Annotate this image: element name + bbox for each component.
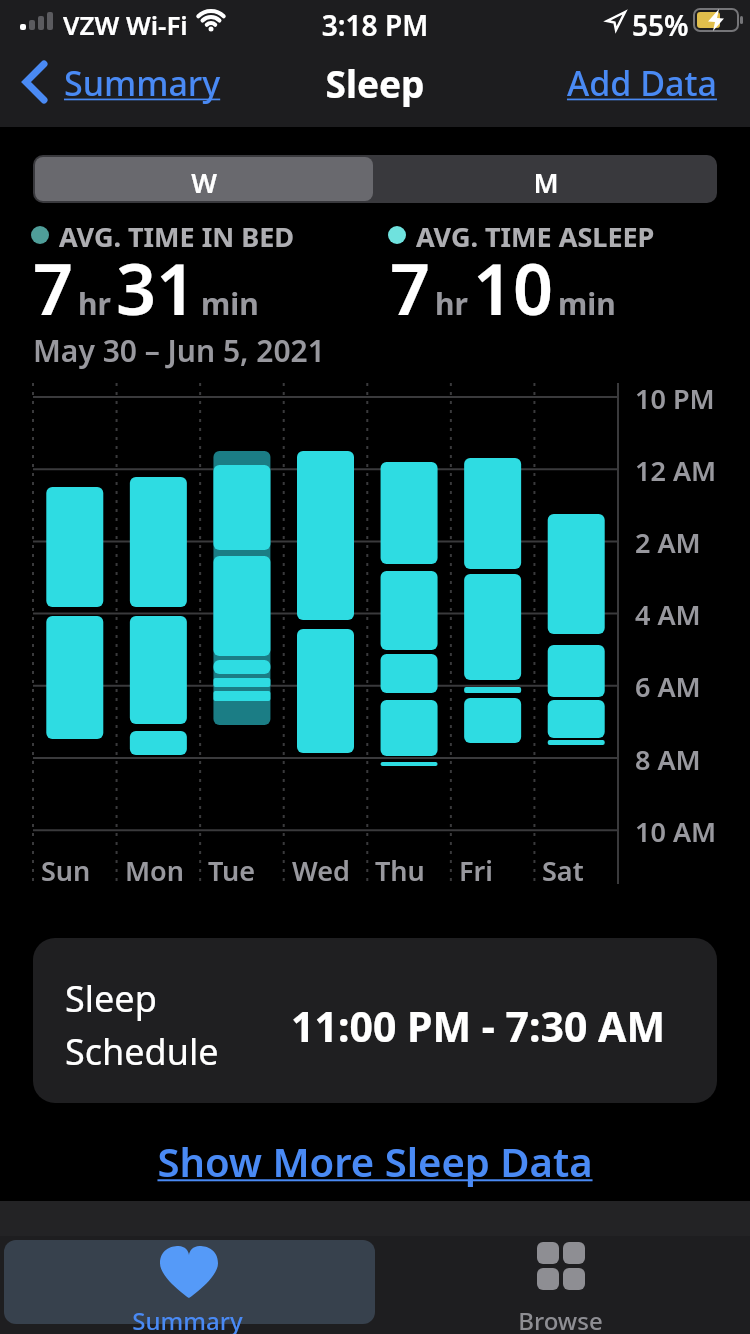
staticText: AVG. TIME IN BED [59, 218, 295, 255]
staticText: 3:18 PM [0, 6, 750, 44]
staticText: Summary [0, 1304, 375, 1334]
staticText: Tue [208, 852, 256, 889]
staticText: 7 hr 31 min [33, 240, 259, 335]
staticText: Add Data [480, 60, 717, 106]
staticText: 7 hr 10 min [390, 240, 616, 335]
staticText: Sleep [0, 58, 750, 108]
staticText: 6 AM [635, 668, 701, 705]
staticText: AVG. TIME ASLEEP [416, 218, 655, 255]
button[interactable]: Add Data [480, 55, 717, 110]
staticText: Mon [125, 852, 184, 889]
staticText: 10 PM [635, 380, 715, 417]
staticText: Summary [64, 60, 221, 106]
staticText: Sleep Schedule [65, 974, 219, 1075]
staticText: May 30 – Jun 5, 2021 [33, 330, 325, 371]
staticText: 10 AM [635, 813, 717, 850]
staticText: Sat [542, 852, 584, 889]
button[interactable]: Sleep Schedule [33, 938, 717, 1103]
button[interactable]: Show More Sleep Data [0, 1130, 750, 1188]
staticText: 11:00 PM - 7:30 AM [291, 998, 666, 1054]
button[interactable]: M [375, 155, 717, 203]
button[interactable] [35, 157, 373, 201]
button[interactable]: Summary [14, 55, 254, 110]
staticText: Browse [375, 1304, 746, 1334]
staticText: W [33, 164, 375, 201]
staticText: Thu [375, 852, 425, 889]
staticText: Show More Sleep Data [0, 1134, 750, 1188]
staticText: Sun [41, 852, 91, 889]
button[interactable] [375, 1240, 746, 1324]
staticText: 12 AM [635, 452, 717, 489]
staticText: 55% [632, 6, 689, 44]
staticText: Wed [292, 852, 350, 889]
button[interactable] [4, 1240, 375, 1324]
staticText: 2 AM [635, 524, 701, 561]
staticText: VZW Wi-Fi [63, 7, 188, 42]
staticText: 4 AM [635, 596, 701, 633]
staticText: M [375, 164, 717, 201]
staticText: 8 AM [635, 741, 701, 778]
staticText: Fri [459, 852, 493, 889]
